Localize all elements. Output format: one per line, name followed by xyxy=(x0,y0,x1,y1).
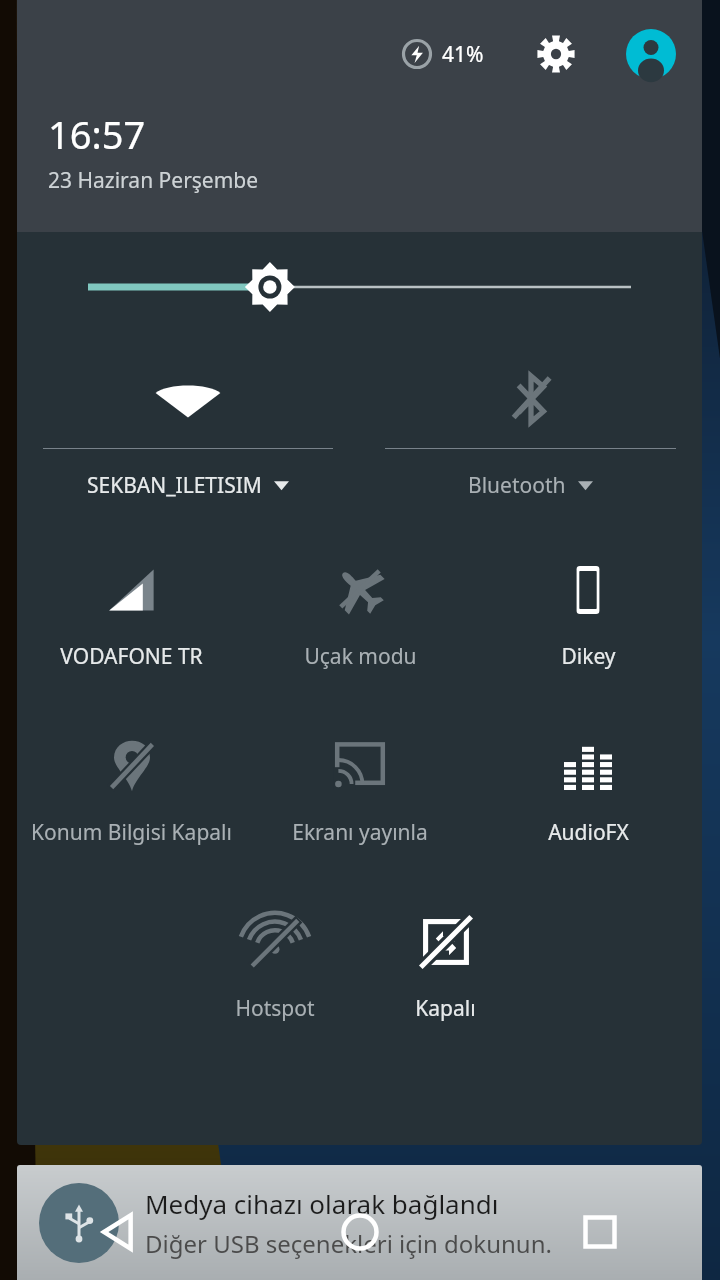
button[interactable]: Konum Bilgisi Kapalı xyxy=(17,714,246,890)
staticText: Diğer USB seçenekleri için dokunun. xyxy=(145,1227,552,1260)
staticText: Hotspot xyxy=(235,994,315,1023)
button[interactable]: Hotspot xyxy=(189,890,360,1066)
button[interactable]: VODAFONE TR xyxy=(17,538,246,714)
other: Battery xyxy=(402,39,432,69)
button[interactable]: Settings xyxy=(530,28,582,80)
staticText: Medya cihazı olarak bağlandı xyxy=(145,1186,499,1221)
button[interactable]: Recents xyxy=(480,1184,720,1280)
button[interactable]: Battery xyxy=(398,39,488,69)
button[interactable]: User xyxy=(624,27,678,81)
button[interactable]: Bluetooth xyxy=(359,342,702,522)
staticText: SEKBAN_ILETISIM xyxy=(87,471,262,500)
staticText: Uçak modu xyxy=(304,642,417,671)
button[interactable]: Dikey xyxy=(474,538,702,714)
staticText: Ekranı yayınla xyxy=(292,818,428,847)
button[interactable]: SEKBAN_ILETISIM xyxy=(17,342,359,522)
button[interactable]: Back xyxy=(0,1184,240,1280)
staticText: Dikey xyxy=(561,642,616,671)
staticText: 41% xyxy=(442,40,484,69)
button[interactable]: AudioFX xyxy=(474,714,702,890)
button[interactable]: Medya cihazı olarak bağlandı xyxy=(17,1165,702,1280)
staticText: Konum Bilgisi Kapalı xyxy=(31,818,232,847)
staticText: Kapalı xyxy=(415,994,476,1023)
button[interactable]: Ekranı yayınla xyxy=(246,714,474,890)
staticText: 23 Haziran Perşembe xyxy=(48,166,259,195)
button[interactable]: Home xyxy=(240,1184,480,1280)
staticText: AudioFX xyxy=(548,818,629,847)
staticText: 16:57 xyxy=(48,108,146,160)
button[interactable]: Brightness xyxy=(17,232,702,342)
staticText: Bluetooth xyxy=(468,471,566,500)
button[interactable]: Kapalı xyxy=(360,890,531,1066)
staticText: VODAFONE TR xyxy=(60,642,203,671)
button[interactable]: Uçak modu xyxy=(246,538,474,714)
